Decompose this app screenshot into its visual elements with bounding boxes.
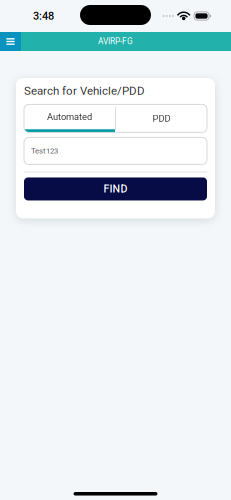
button[interactable]: Automated (24, 104, 115, 132)
staticText: AVIRP-FG (98, 37, 133, 46)
staticText: Automated (47, 111, 92, 122)
button[interactable]: PDD (116, 104, 207, 132)
staticText: PDD (152, 113, 170, 124)
staticText: FIND (103, 183, 127, 195)
staticText: 3:48 (33, 10, 54, 22)
button[interactable]: FIND (24, 177, 207, 200)
button[interactable]: Menu (0, 32, 21, 51)
staticText: Test123 (31, 146, 58, 155)
staticText: Search for Vehicle/PDD (24, 84, 145, 97)
